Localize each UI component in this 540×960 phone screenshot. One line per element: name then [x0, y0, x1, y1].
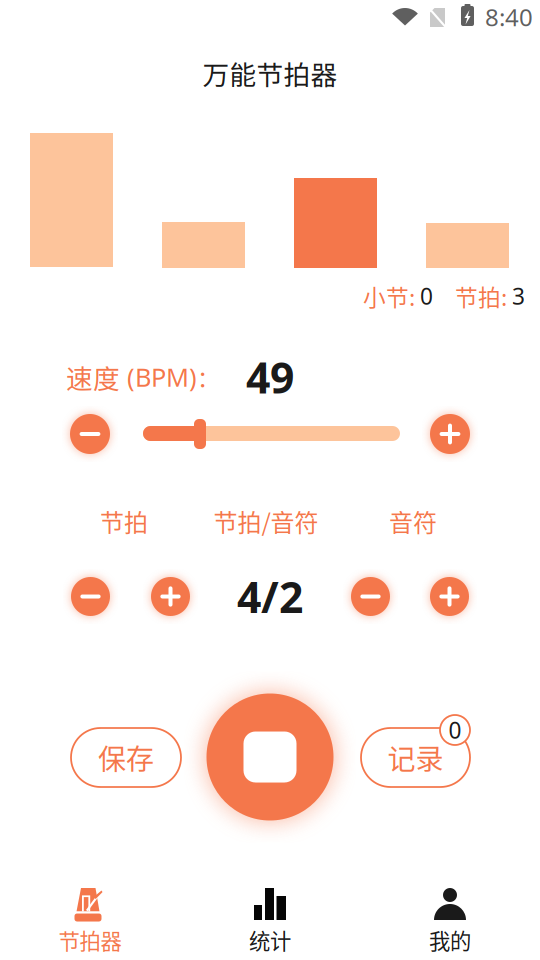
- staticText: 统计: [249, 925, 291, 955]
- staticText: 0: [448, 715, 461, 745]
- staticText: 音符: [389, 504, 437, 538]
- button[interactable]: 记录: [361, 728, 470, 787]
- staticText: 0: [420, 281, 433, 311]
- staticText: 49: [246, 348, 294, 406]
- staticText: 万能节拍器: [202, 54, 337, 92]
- staticText: 8:40: [485, 1, 533, 33]
- staticText: ：: [197, 361, 220, 393]
- staticText: 4/2: [237, 567, 303, 625]
- button[interactable]: Decrease: [66, 572, 115, 621]
- button[interactable]: 统计: [180, 872, 360, 960]
- button[interactable]: Increase: [146, 572, 195, 621]
- button[interactable]: Decrease: [65, 409, 115, 459]
- staticText: 小节:: [363, 280, 420, 312]
- button[interactable]: 我的: [360, 872, 540, 960]
- staticText: 节拍:: [455, 280, 512, 312]
- button[interactable]: 保存: [71, 728, 181, 787]
- staticText: 节拍器: [58, 925, 121, 955]
- staticText: 3: [512, 281, 525, 311]
- staticText: 节拍/音符: [213, 504, 318, 538]
- staticText: 节拍: [100, 504, 148, 538]
- staticText: (BPM): [120, 360, 197, 394]
- button[interactable]: Increase: [425, 409, 475, 459]
- button[interactable]: 节拍器: [0, 872, 180, 960]
- staticText: 记录: [387, 737, 443, 778]
- staticText: 保存: [98, 737, 154, 778]
- button[interactable]: Stop: [190, 677, 350, 837]
- button[interactable]: Increase: [425, 572, 474, 621]
- staticText: 我的: [429, 925, 471, 955]
- staticText: 速度: [66, 358, 120, 396]
- button[interactable]: Decrease: [346, 572, 395, 621]
